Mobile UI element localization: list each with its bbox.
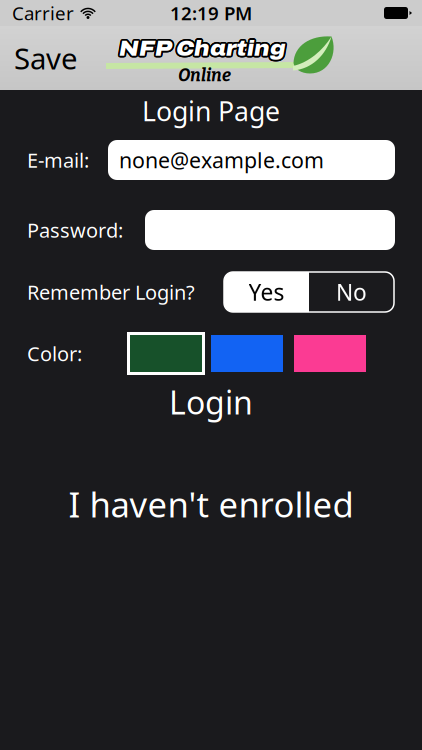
staticText: NFP Charting bbox=[120, 36, 287, 59]
staticText: Carrier bbox=[12, 1, 74, 25]
staticText: NFP Charting bbox=[117, 37, 284, 60]
staticText: NFP Charting bbox=[120, 35, 287, 59]
staticText: NFP Charting bbox=[120, 39, 287, 62]
staticText: NFP Charting bbox=[118, 36, 285, 59]
staticText: none@example.com bbox=[119, 146, 324, 174]
staticText: E-mail: bbox=[27, 147, 89, 173]
staticText: NFP Charting bbox=[117, 36, 284, 59]
button[interactable]: Login bbox=[131, 384, 291, 420]
staticText: NFP Charting bbox=[121, 36, 288, 59]
staticText: No bbox=[336, 277, 367, 307]
button[interactable]: Pink theme bbox=[291, 332, 369, 375]
staticText: Login bbox=[169, 381, 253, 423]
staticText: Yes bbox=[248, 277, 284, 307]
staticText: Login Page bbox=[142, 93, 280, 129]
button[interactable]: I haven't enrolled bbox=[61, 484, 361, 524]
button[interactable]: Yes bbox=[224, 272, 309, 312]
staticText: 12:19 PM bbox=[170, 1, 252, 25]
staticText: NFP Charting bbox=[118, 38, 285, 61]
staticText: NFP Charting bbox=[119, 39, 286, 62]
staticText: NFP Charting bbox=[118, 39, 285, 62]
staticText: I haven't enrolled bbox=[68, 481, 353, 527]
button[interactable]: Green theme bbox=[127, 332, 205, 375]
staticText: NFP Charting bbox=[119, 35, 286, 58]
staticText: Online bbox=[178, 65, 231, 86]
button[interactable]: Blue theme bbox=[208, 332, 286, 375]
staticText: Color: bbox=[27, 340, 82, 367]
staticText: NFP Charting bbox=[120, 38, 287, 61]
staticText: NFP Charting bbox=[117, 38, 284, 61]
button[interactable]: Save bbox=[11, 26, 81, 90]
staticText: Remember Login? bbox=[27, 279, 195, 305]
staticText: NFP Charting bbox=[121, 37, 288, 60]
staticText: NFP Charting bbox=[118, 35, 285, 59]
staticText: Save bbox=[14, 38, 78, 77]
staticText: NFP Charting bbox=[121, 38, 288, 61]
staticText: Password: bbox=[27, 217, 123, 243]
button[interactable]: No bbox=[309, 272, 394, 312]
staticText: NFP Charting bbox=[119, 37, 286, 60]
